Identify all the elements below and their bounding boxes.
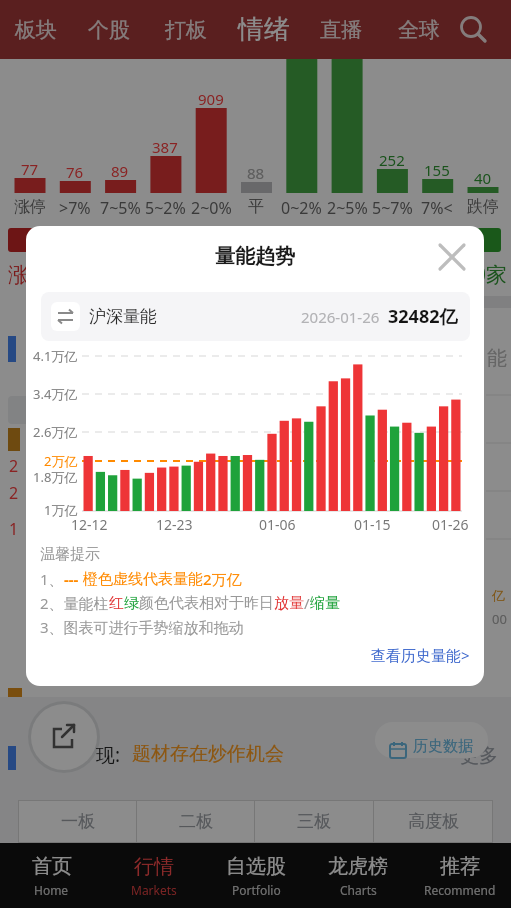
staticText: 全球 [398, 17, 440, 43]
staticText: 自选股 [226, 854, 286, 879]
staticText: 2 [9, 482, 19, 502]
button[interactable]: 推荐 [409, 843, 511, 908]
staticText: 01-26 [432, 515, 469, 533]
button[interactable]: 板块 [12, 0, 60, 59]
staticText: 跌停 [467, 197, 499, 215]
staticText: 7~5% [100, 197, 141, 215]
staticText: 颜色代表相对于昨日 [139, 594, 274, 613]
staticText: 能 [487, 346, 507, 368]
staticText: 历史数据 [413, 737, 473, 756]
staticText: 沪深量能 [89, 306, 157, 327]
staticText: 155 [424, 160, 450, 178]
staticText: 0~2% [281, 197, 322, 215]
staticText: Markets [131, 882, 177, 898]
staticText: 2 [9, 455, 19, 475]
staticText: 龙虎榜 [328, 854, 388, 879]
button[interactable]: 龙虎榜 [307, 843, 409, 908]
staticText: 76 [66, 162, 84, 180]
staticText: 4.1万亿 [33, 347, 78, 365]
staticText: 绿 [124, 594, 139, 613]
staticText: 一板 [61, 811, 95, 832]
staticText: 252 [379, 150, 405, 168]
staticText: 个股 [88, 17, 130, 43]
staticText: 三板 [297, 811, 331, 832]
staticText: 红 [109, 594, 124, 613]
staticText: 89 [111, 161, 129, 179]
staticText: 40 [474, 168, 492, 186]
button[interactable] [31, 704, 97, 770]
staticText: 缩量 [310, 594, 340, 613]
staticText: 12-23 [156, 515, 193, 533]
button[interactable]: 首页 [0, 843, 103, 908]
staticText: 橙色虚线代表量能 [83, 570, 203, 589]
staticText: 12-12 [71, 515, 108, 533]
button[interactable] [455, 12, 491, 48]
staticText: 2万亿 [44, 452, 78, 470]
staticText: 首页 [32, 854, 72, 879]
staticText: 量能趋势 [215, 244, 295, 269]
staticText: 2、量能柱 [40, 593, 109, 613]
button[interactable]: 沪深量能 [51, 292, 458, 341]
staticText: 1万亿 [44, 501, 78, 519]
staticText: 现: [96, 742, 121, 766]
button[interactable]: 打板 [162, 0, 210, 59]
staticText: 行情 [134, 854, 174, 879]
button[interactable]: 行情 [103, 843, 205, 908]
staticText: 查看历史量能> [371, 645, 470, 665]
staticText: 32482亿 [388, 304, 458, 329]
staticText: 二板 [179, 811, 213, 832]
staticText: 打板 [165, 17, 207, 43]
staticText: 3、图表可进行手势缩放和拖动 [40, 617, 244, 637]
staticText: 涨停408家 [8, 260, 108, 286]
staticText: 平 [248, 197, 264, 215]
staticText: 2~5% [327, 197, 368, 215]
staticText: 2~0% [191, 197, 232, 215]
staticText: 01-15 [354, 515, 391, 533]
staticText: 2026-01-26 [301, 307, 380, 327]
staticText: 88 [247, 163, 265, 181]
staticText: 涨停 [14, 197, 46, 215]
button[interactable] [430, 235, 474, 279]
button[interactable]: 高度板 [374, 801, 492, 842]
staticText: 直播 [320, 17, 362, 43]
staticText: / [304, 593, 310, 613]
staticText: 1、 [40, 569, 64, 589]
staticText: 5~2% [145, 197, 186, 215]
staticText: 909 [198, 89, 224, 107]
staticText: 00 [492, 610, 507, 628]
button[interactable]: 直播 [317, 0, 365, 59]
staticText: 亿 [492, 587, 505, 603]
button[interactable]: 二板 [137, 801, 254, 842]
staticText: Home [34, 882, 69, 898]
staticText: 情绪 [238, 13, 290, 46]
staticText: 温馨提示 [40, 545, 100, 564]
button[interactable]: 查看历史量能> [270, 644, 470, 666]
staticText: 1 [9, 518, 19, 538]
staticText: 2万亿 [203, 569, 242, 589]
button[interactable]: 三板 [255, 801, 373, 842]
staticText: --- [64, 569, 83, 589]
button[interactable]: 历史数据 [375, 722, 488, 758]
staticText: 7%< [421, 197, 453, 215]
staticText: Recommend [424, 882, 496, 898]
staticText: 跌停40家 [420, 260, 508, 286]
staticText: >7% [59, 197, 91, 215]
staticText: 5~7% [372, 197, 413, 215]
button[interactable]: 情绪 [232, 0, 296, 59]
button[interactable]: 自选股 [205, 843, 307, 908]
staticText: 387 [152, 137, 178, 155]
staticText: 77 [21, 159, 39, 177]
staticText: 01-06 [259, 515, 296, 533]
staticText: 题材存在炒作机会 [132, 742, 284, 766]
staticText: Charts [340, 882, 377, 898]
staticText: 2.6万亿 [33, 423, 78, 441]
button[interactable]: 全球 [395, 0, 443, 59]
staticText: 1.8万亿 [33, 468, 78, 486]
staticText: 3.4万亿 [33, 385, 78, 403]
button[interactable]: 个股 [85, 0, 133, 59]
button[interactable]: 一板 [19, 801, 136, 842]
staticText: 高度板 [408, 811, 459, 832]
staticText: 板块 [15, 17, 57, 43]
staticText: Portfolio [232, 882, 281, 898]
staticText: 推荐 [440, 854, 480, 879]
